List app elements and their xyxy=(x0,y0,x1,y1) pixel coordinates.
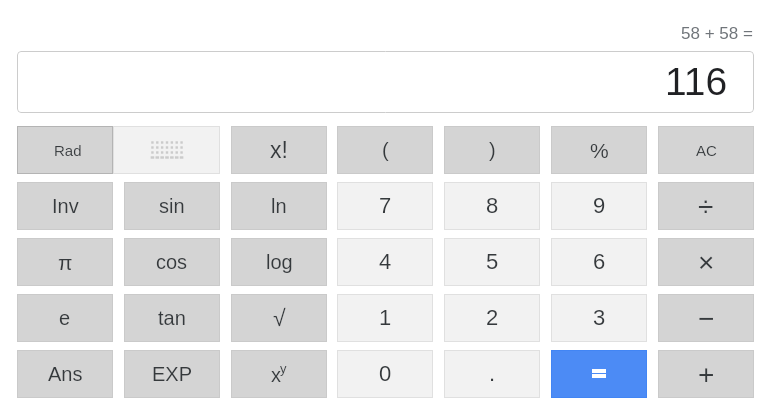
staticText: 0 xyxy=(379,361,392,386)
button[interactable]: e xyxy=(17,294,113,342)
staticText: √ xyxy=(273,305,286,331)
button[interactable]: 1 xyxy=(337,294,433,342)
button[interactable]: 3 xyxy=(551,294,647,342)
staticText: 8 xyxy=(486,193,499,218)
button[interactable]: . xyxy=(444,350,540,398)
staticText: 9 xyxy=(593,193,606,218)
button[interactable]: Equals xyxy=(551,350,647,398)
button[interactable]: x xyxy=(231,350,327,398)
button[interactable]: 6 xyxy=(551,238,647,286)
button[interactable]: 0 xyxy=(337,350,433,398)
button[interactable]: % xyxy=(551,126,647,174)
staticText: ÷ xyxy=(698,191,714,222)
button[interactable]: log xyxy=(231,238,327,286)
staticText: sin xyxy=(159,195,185,217)
staticText: 4 xyxy=(379,249,392,274)
staticText: log xyxy=(266,251,293,273)
button[interactable]: cos xyxy=(124,238,220,286)
button[interactable]: ln xyxy=(231,182,327,230)
staticText: 5 xyxy=(486,249,499,274)
staticText: ln xyxy=(271,195,287,217)
staticText: Inv xyxy=(52,195,79,217)
staticText: y xyxy=(280,361,287,376)
button[interactable]: x! xyxy=(231,126,327,174)
button[interactable]: sin xyxy=(124,182,220,230)
staticText: × xyxy=(698,247,715,278)
staticText: π xyxy=(58,251,73,274)
button[interactable]: Inv xyxy=(17,182,113,230)
button[interactable]: × xyxy=(658,238,754,286)
button[interactable]: AC xyxy=(658,126,754,174)
staticText: x xyxy=(271,364,281,386)
staticText: tan xyxy=(158,307,186,329)
button[interactable]: 5 xyxy=(444,238,540,286)
staticText: EXP xyxy=(152,363,193,385)
button[interactable]: 7 xyxy=(337,182,433,230)
staticText: 3 xyxy=(593,305,606,330)
staticText: AC xyxy=(696,142,717,159)
button[interactable]: 9 xyxy=(551,182,647,230)
button[interactable]: ÷ xyxy=(658,182,754,230)
button[interactable]: + xyxy=(658,350,754,398)
staticText: − xyxy=(698,303,715,334)
button[interactable]: Keyboard input xyxy=(113,126,220,174)
button[interactable]: Rad xyxy=(17,126,113,174)
button[interactable]: EXP xyxy=(124,350,220,398)
staticText: ) xyxy=(489,139,496,161)
staticText: 1 xyxy=(379,305,392,330)
staticText: ( xyxy=(382,139,389,161)
button[interactable]: ) xyxy=(444,126,540,174)
staticText: % xyxy=(590,139,609,162)
staticText: x! xyxy=(270,137,288,163)
button[interactable]: 4 xyxy=(337,238,433,286)
staticText: 58 + 58 = xyxy=(681,24,753,43)
button[interactable]: 8 xyxy=(444,182,540,230)
staticText: 2 xyxy=(486,305,499,330)
button[interactable]: ( xyxy=(337,126,433,174)
button[interactable]: − xyxy=(658,294,754,342)
button[interactable]: π xyxy=(17,238,113,286)
staticText: Ans xyxy=(48,363,83,385)
staticText: cos xyxy=(156,251,188,273)
button[interactable]: tan xyxy=(124,294,220,342)
staticText: 6 xyxy=(593,249,606,274)
staticText: . xyxy=(489,361,496,386)
staticText: Rad xyxy=(54,142,82,159)
staticText: + xyxy=(698,359,715,390)
button[interactable]: 2 xyxy=(444,294,540,342)
staticText: 7 xyxy=(379,193,392,218)
staticText: 116 xyxy=(665,60,728,104)
button[interactable]: Ans xyxy=(17,350,113,398)
button[interactable]: √ xyxy=(231,294,327,342)
staticText: e xyxy=(59,307,71,329)
